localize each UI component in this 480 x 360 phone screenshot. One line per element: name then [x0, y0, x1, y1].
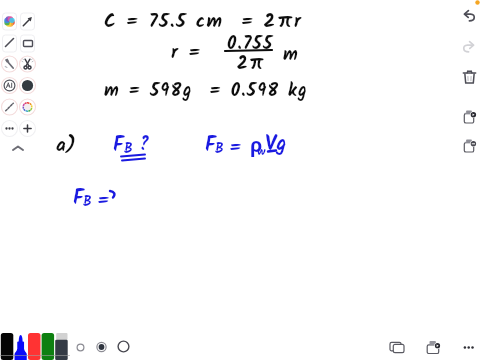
button[interactable]: Pen [43, 331, 56, 360]
button[interactable]: Redo [460, 39, 478, 57]
staticText: a) [56, 131, 76, 161]
staticText: B [215, 138, 224, 160]
button[interactable]: Tool [1, 121, 18, 138]
button[interactable]: Tool [19, 121, 36, 138]
button[interactable]: Tool [20, 35, 35, 52]
staticText: = [97, 186, 110, 216]
staticText: C = 75.5 cm = 2πr [104, 7, 303, 37]
button[interactable]: Thin [74, 340, 88, 354]
button[interactable]: Thick [117, 340, 131, 354]
button[interactable]: Delete [460, 70, 478, 88]
staticText: w [257, 142, 266, 161]
staticText: r = [171, 38, 203, 68]
button[interactable]: Paste [460, 110, 478, 128]
staticText: F [73, 183, 84, 215]
button[interactable]: Undo [460, 8, 478, 26]
button[interactable]: Tool [1, 56, 18, 73]
staticText: ρ [250, 131, 263, 158]
button[interactable]: Pen [57, 331, 70, 360]
staticText: m [283, 41, 298, 70]
staticText: 2π [237, 50, 265, 79]
button[interactable]: Add page [425, 339, 443, 357]
button[interactable]: Pen [29, 331, 42, 360]
staticText: F [205, 130, 216, 162]
button[interactable]: Copy [460, 138, 478, 156]
button[interactable]: Tool [20, 13, 35, 30]
button[interactable]: Tool [2, 35, 17, 52]
button[interactable]: Pages [389, 339, 407, 357]
staticText: = [229, 133, 242, 163]
button[interactable]: Pen [15, 331, 28, 360]
staticText: m = 598g = 0.598 kg [104, 77, 308, 106]
staticText: B [124, 138, 133, 160]
button[interactable]: Tool [1, 99, 18, 116]
button[interactable]: Pen [1, 331, 14, 360]
button[interactable]: Tool [19, 99, 36, 116]
button[interactable]: Medium [95, 340, 109, 354]
button[interactable]: Tool [2, 13, 17, 30]
staticText: ? [138, 130, 150, 160]
staticText: F [113, 130, 124, 162]
button[interactable]: More [461, 339, 479, 357]
staticText: Vg [265, 128, 287, 161]
button[interactable]: Tool [19, 56, 36, 73]
button[interactable]: Collapse toolbar [11, 142, 27, 154]
button[interactable]: Tool [1, 78, 18, 95]
button[interactable]: Tool [19, 78, 36, 95]
staticText: 0.755 [227, 30, 274, 59]
staticText: B [83, 191, 92, 213]
